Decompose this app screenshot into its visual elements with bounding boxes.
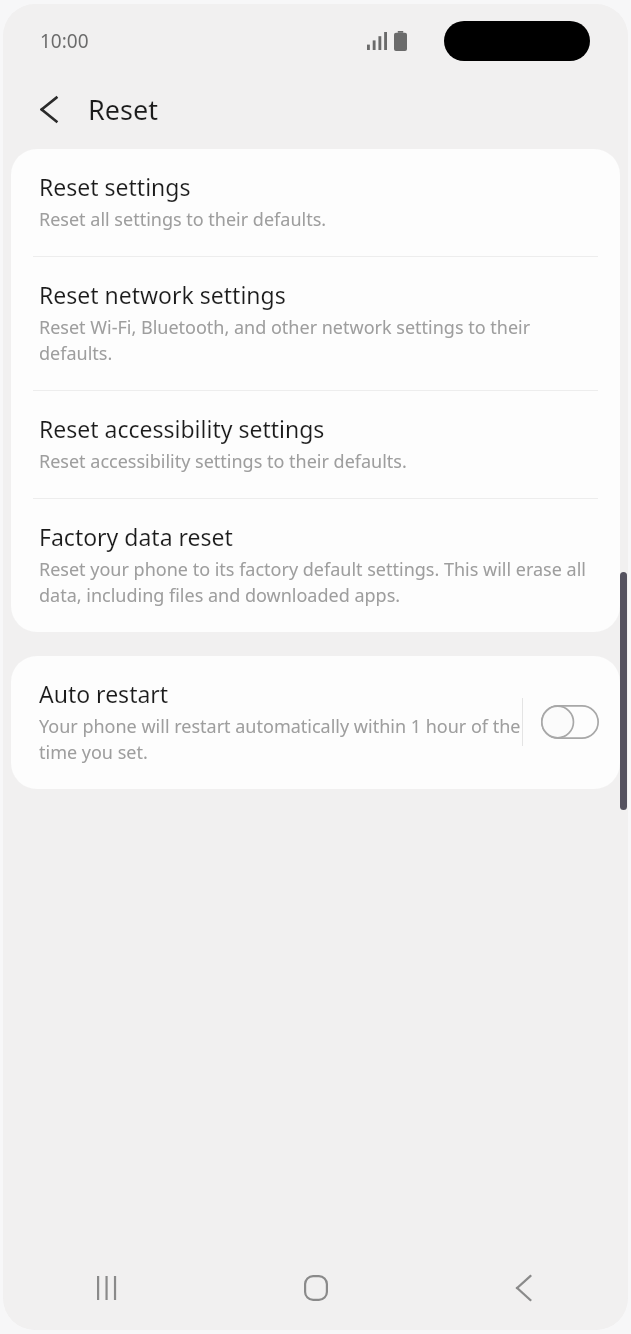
- staticText: Your phone will restart automatically wi…: [39, 714, 522, 765]
- staticText: Reset all settings to their defaults.: [39, 207, 327, 232]
- staticText: Reset accessibility settings: [39, 413, 325, 444]
- button[interactable]: Reset network settings: [11, 257, 620, 390]
- button[interactable]: Reset settings: [11, 149, 620, 256]
- button[interactable]: Recent apps: [3, 1246, 212, 1330]
- button[interactable]: Back: [25, 85, 73, 133]
- button[interactable]: Back: [420, 1246, 628, 1330]
- staticText: Factory data reset: [39, 521, 233, 552]
- staticText: Reset settings: [39, 171, 191, 202]
- button[interactable]: Reset accessibility settings: [11, 391, 620, 498]
- staticText: 10:00: [40, 28, 89, 54]
- staticText: Reset Wi-Fi, Bluetooth, and other networ…: [39, 315, 592, 366]
- button[interactable]: Auto restart toggle: [540, 702, 600, 742]
- button[interactable]: Factory data reset: [11, 499, 620, 632]
- button[interactable]: Auto restart: [11, 656, 620, 789]
- staticText: Reset network settings: [39, 279, 286, 310]
- button[interactable]: Home: [212, 1246, 420, 1330]
- staticText: Reset accessibility settings to their de…: [39, 449, 407, 474]
- staticText: Auto restart: [39, 678, 169, 709]
- staticText: Reset your phone to its factory default …: [39, 557, 592, 608]
- staticText: Reset: [88, 91, 158, 128]
